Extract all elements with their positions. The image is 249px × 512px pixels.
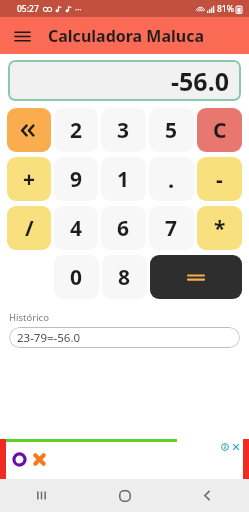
staticText: 23-79=-56.0 <box>17 330 81 346</box>
button[interactable]: + <box>7 157 51 201</box>
button[interactable]: Recent apps <box>0 479 83 512</box>
staticText: 7 <box>165 214 178 243</box>
button[interactable]: Backspace <box>7 108 51 152</box>
button[interactable]: C <box>197 108 242 152</box>
button[interactable]: / <box>7 206 51 250</box>
staticText: Histórico <box>9 311 49 324</box>
button[interactable]: -56.0 <box>8 60 241 101</box>
staticText: 81% <box>217 3 234 15</box>
button[interactable]: 1 <box>101 157 146 201</box>
staticText: - <box>216 165 223 194</box>
staticText: 1 <box>117 165 130 194</box>
button[interactable]: Menu <box>10 24 34 48</box>
button[interactable]: Advertisement <box>6 439 243 479</box>
staticText: * <box>214 214 226 243</box>
button[interactable]: . <box>149 157 194 201</box>
button[interactable]: - <box>197 157 242 201</box>
staticText: / <box>25 214 34 243</box>
button[interactable]: 23-79=-56.0 <box>9 327 240 348</box>
button[interactable]: 5 <box>149 108 194 152</box>
button[interactable]: 0 <box>54 255 99 299</box>
button[interactable]: * <box>197 206 242 250</box>
button[interactable]: 6 <box>101 206 146 250</box>
staticText: 0 <box>70 263 83 292</box>
staticText: C <box>213 116 227 145</box>
staticText: 4 <box>70 214 83 243</box>
staticText: 3 <box>117 116 130 145</box>
staticText: Calculadora Maluca <box>48 25 205 47</box>
button[interactable]: 2 <box>54 108 98 152</box>
button[interactable]: 8 <box>102 255 147 299</box>
staticText: 6 <box>117 214 130 243</box>
staticText: 9 <box>70 165 83 194</box>
button[interactable]: 7 <box>149 206 194 250</box>
button[interactable]: 3 <box>101 108 146 152</box>
button[interactable]: Equals <box>150 255 242 299</box>
staticText: . <box>168 164 175 194</box>
staticText: -56.0 <box>171 64 229 98</box>
staticText: 8 <box>118 263 131 292</box>
staticText: 2 <box>70 116 83 145</box>
staticText: ··· <box>75 4 82 15</box>
button[interactable]: 9 <box>54 157 98 201</box>
staticText: 05:27 <box>17 3 39 15</box>
staticText: + <box>23 165 36 194</box>
button[interactable]: Back <box>166 479 249 512</box>
button[interactable]: Home <box>83 479 166 512</box>
button[interactable]: 4 <box>54 206 98 250</box>
staticText: 5 <box>165 116 178 145</box>
